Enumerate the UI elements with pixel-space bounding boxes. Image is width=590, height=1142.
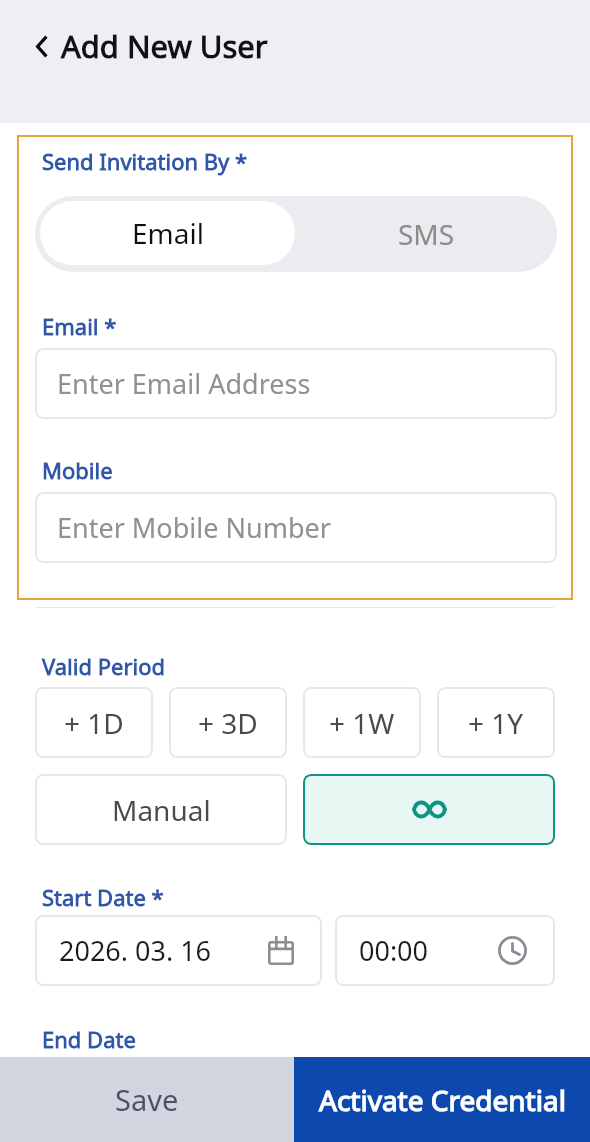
staticText: + 3D (198, 704, 258, 742)
staticText: 00:00 (359, 932, 429, 969)
staticText: 2026. 03. 16 (59, 932, 212, 969)
staticText: Email (132, 214, 204, 252)
staticText: Save (115, 1080, 179, 1119)
button[interactable]: + 1Y (437, 687, 555, 758)
button[interactable]: SMS (296, 196, 557, 272)
button[interactable]: Enter Email Address (35, 348, 557, 419)
button[interactable]: Enter Mobile Number (35, 492, 557, 563)
staticText: Enter Email Address (57, 365, 311, 402)
button[interactable]: Back (28, 21, 276, 71)
other: Back (36, 35, 48, 58)
staticText: + 1D (64, 704, 124, 742)
button[interactable]: Activate Credential (294, 1057, 590, 1142)
staticText: + 1Y (468, 704, 524, 742)
button[interactable]: + 1D (35, 687, 153, 758)
button[interactable]: 00:00 (335, 915, 555, 986)
staticText: Manual (112, 791, 211, 829)
button[interactable]: + 1W (303, 687, 421, 758)
staticText: Add New User (61, 25, 268, 67)
staticText: + 1W (329, 704, 395, 742)
button[interactable]: Email (40, 201, 295, 265)
staticText: Activate Credential (319, 1081, 566, 1119)
staticText: Email * (42, 311, 117, 341)
staticText: End Date (42, 1024, 136, 1054)
staticText: Start Date * (42, 882, 164, 912)
other: Pick time (498, 936, 527, 965)
button[interactable]: No expiry (303, 774, 555, 845)
staticText: Mobile (42, 455, 113, 485)
staticText: Enter Mobile Number (57, 509, 331, 546)
button[interactable]: Save (0, 1057, 294, 1142)
other: Pick date (268, 936, 294, 965)
button[interactable]: 2026. 03. 16 (35, 915, 322, 986)
staticText: SMS (398, 215, 455, 253)
staticText: Send Invitation By * (42, 146, 248, 176)
staticText: Valid Period (42, 651, 166, 681)
button[interactable]: + 3D (169, 687, 287, 758)
button[interactable]: Manual (35, 774, 287, 845)
